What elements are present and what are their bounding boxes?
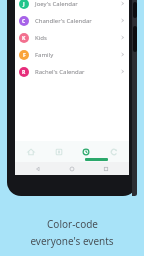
staticText: Family (35, 51, 54, 59)
button[interactable]: Agenda (46, 141, 71, 162)
staticText: J (23, 1, 25, 8)
staticText: Color-code (47, 217, 98, 231)
staticText: everyone's events (30, 234, 114, 248)
button[interactable]: R (15, 63, 129, 80)
staticText: Joey's Calendar (35, 0, 78, 8)
button[interactable]: Home (18, 141, 43, 162)
button[interactable]: K (15, 29, 129, 46)
staticText: F (23, 52, 26, 59)
staticText: C (22, 18, 26, 25)
button[interactable]: Sync (101, 141, 126, 162)
staticText: K (22, 35, 26, 42)
button[interactable]: F (15, 46, 129, 63)
staticText: Rachel's Calendar (35, 68, 85, 76)
button[interactable]: C (15, 12, 129, 29)
staticText: Chandler's Calendar (35, 17, 92, 25)
staticText: R (22, 69, 26, 76)
button[interactable]: Calendars (73, 141, 98, 162)
staticText: Kids (35, 34, 47, 42)
button[interactable]: J (15, 0, 129, 12)
